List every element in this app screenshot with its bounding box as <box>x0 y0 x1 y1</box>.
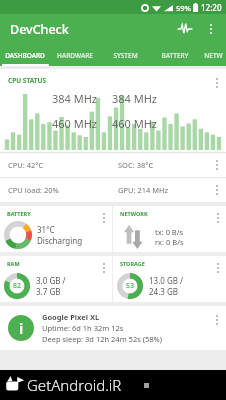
button[interactable]: CPU STATUS <box>0 69 226 152</box>
staticText: SYSTEM <box>113 51 138 60</box>
staticText: 82 <box>13 281 22 291</box>
button[interactable]: HARDWARE <box>50 44 100 66</box>
staticText: 384 MHz <box>52 91 98 106</box>
button[interactable]: Options <box>210 155 224 175</box>
button[interactable]: RAM <box>0 256 112 302</box>
staticText: BATTERY <box>161 51 189 60</box>
button[interactable]: More options <box>198 16 224 42</box>
button[interactable]: NETWORK options <box>211 208 225 228</box>
staticText: 31°C <box>37 224 55 235</box>
staticText: NETWORK <box>120 210 148 217</box>
button[interactable]: Monitor <box>172 16 198 42</box>
staticText: 460 MHz <box>52 116 98 131</box>
staticText: 24.3 GB <box>149 286 178 297</box>
button[interactable]: BATTERY <box>150 44 200 66</box>
staticText: STORAGE <box>120 260 145 267</box>
button[interactable]: Options <box>210 180 224 200</box>
staticText: rx: 0 B/s <box>155 237 184 247</box>
button[interactable]: RAM options <box>97 258 111 278</box>
staticText: i <box>19 319 24 338</box>
staticText: Discharging <box>37 235 83 246</box>
button[interactable]: CPU load: 20% <box>0 178 226 202</box>
button[interactable]: BATTERY options <box>97 208 111 228</box>
button[interactable]: CPU options <box>210 73 224 93</box>
button[interactable]: DASHBOARD <box>0 44 50 66</box>
staticText: HARDWARE <box>57 51 93 60</box>
button[interactable]: CPU: 42°C <box>0 153 226 177</box>
staticText: 53 <box>126 281 135 291</box>
button[interactable]: Device options <box>210 310 224 330</box>
staticText: 3.7 GB <box>36 286 61 297</box>
staticText: DASHBOARD <box>5 51 45 60</box>
staticText: SOC: 38°C <box>118 160 154 170</box>
staticText: 384 MHz <box>112 91 158 106</box>
staticText: 13.0 GB / <box>149 275 184 286</box>
staticText: Google Pixel XL <box>42 312 100 322</box>
button[interactable]: STORAGE <box>113 256 226 302</box>
staticText: GetAndroid.iR <box>27 375 122 395</box>
staticText: CPU load: 20% <box>8 185 59 195</box>
button[interactable]: NETWORK <box>113 206 226 252</box>
button[interactable]: i <box>0 306 226 350</box>
button[interactable]: NETW <box>200 44 226 66</box>
staticText: 3.0 GB / <box>36 275 66 286</box>
staticText: CPU: 42°C <box>8 160 44 170</box>
staticText: RAM <box>7 260 20 267</box>
staticText: GPU: 214 MHz <box>118 185 169 195</box>
button[interactable]: SYSTEM <box>100 44 150 66</box>
staticText: tx: 0 B/s <box>155 227 184 237</box>
staticText: CPU STATUS <box>8 76 46 85</box>
staticText: 460 MHz <box>112 116 158 131</box>
staticText: DevCheck <box>10 21 69 38</box>
staticText: 12:20 <box>201 2 222 13</box>
staticText: Uptime: 6d 1h 32m 12s <box>42 323 124 333</box>
button[interactable]: STORAGE options <box>211 258 225 278</box>
staticText: NETW <box>204 51 223 60</box>
staticText: 59% <box>176 3 191 13</box>
staticText: Deep sleep: 3d 12h 24m 52s (58%) <box>42 334 163 344</box>
button[interactable]: BATTERY <box>0 206 112 252</box>
staticText: BATTERY <box>7 210 31 217</box>
